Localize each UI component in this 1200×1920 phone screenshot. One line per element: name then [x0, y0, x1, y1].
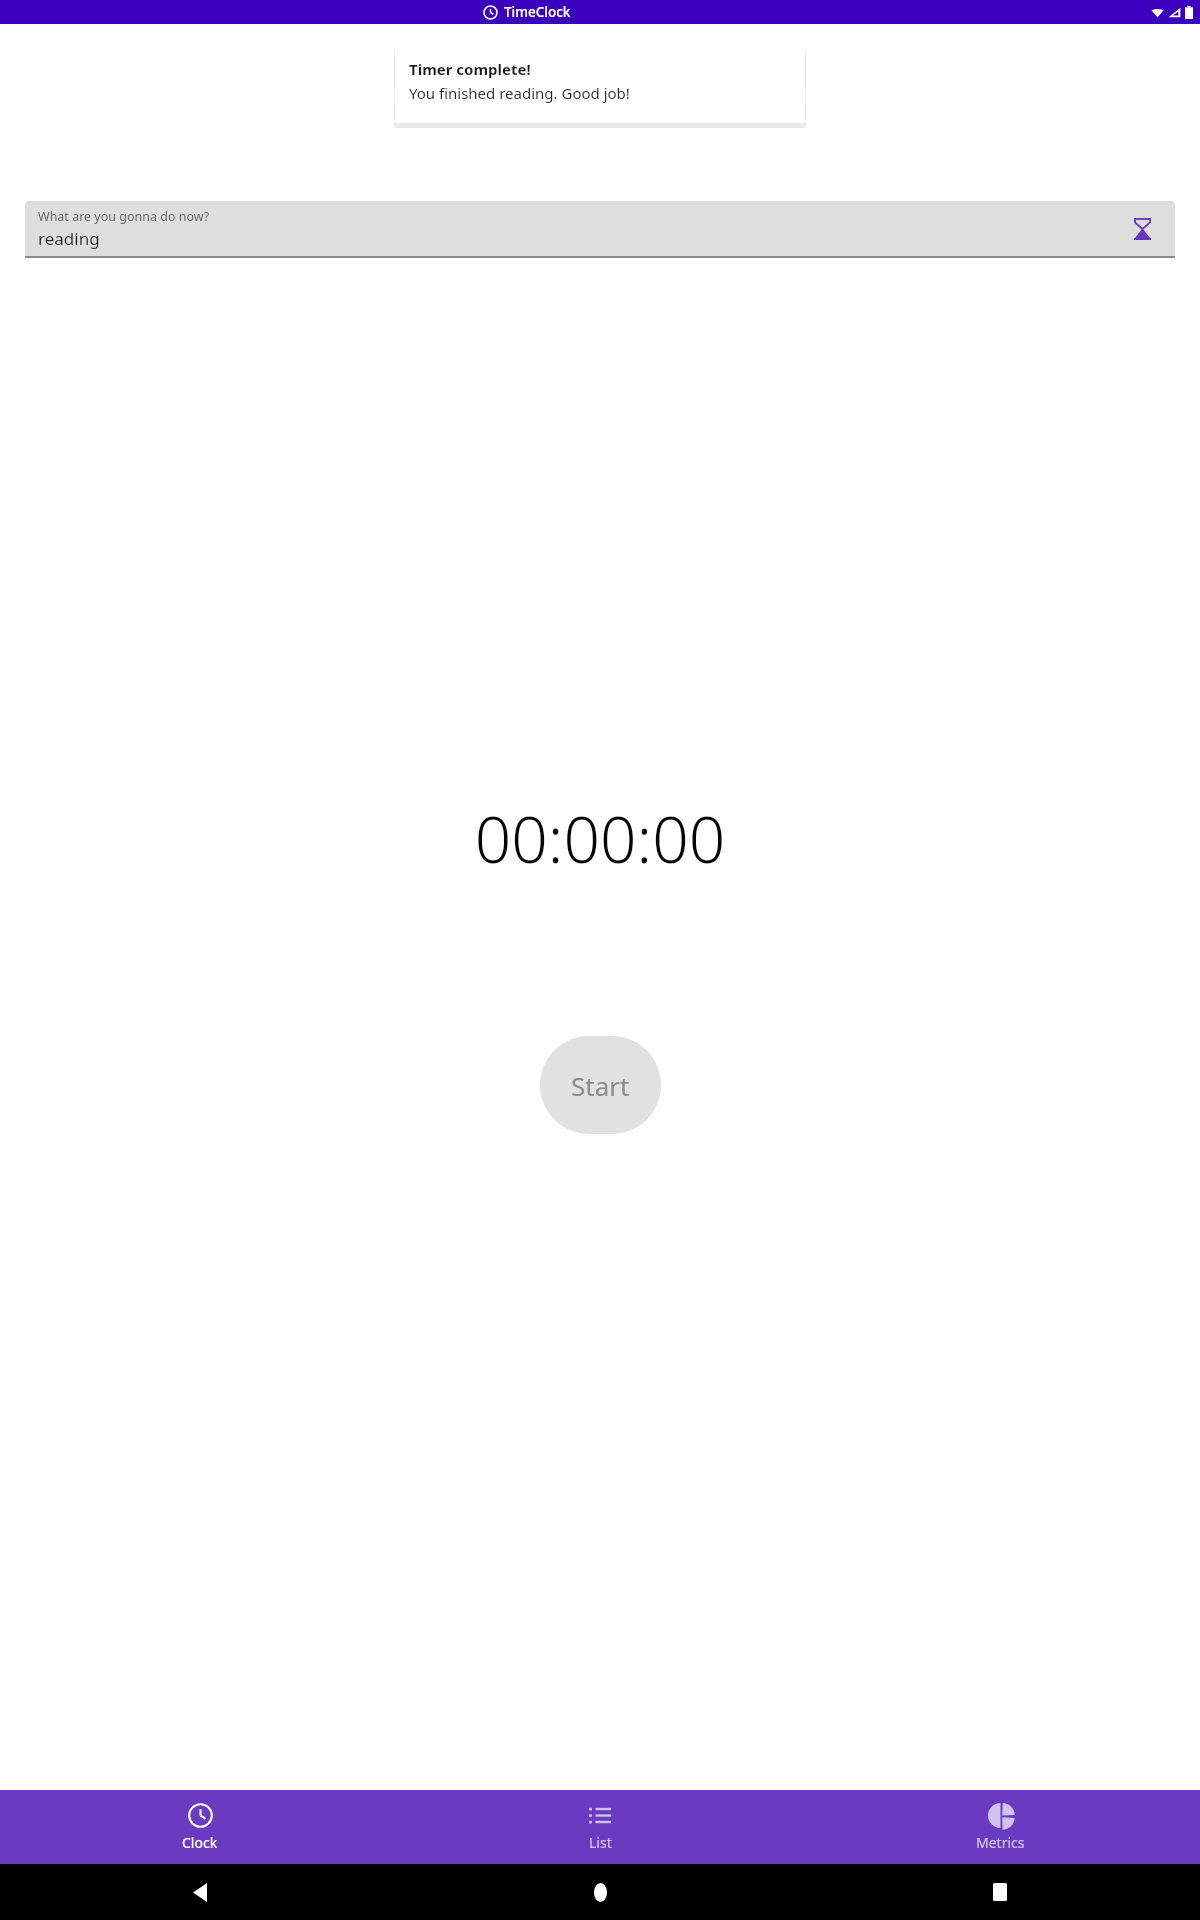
staticText: You finished reading. Good job!	[409, 83, 630, 103]
button[interactable]: Back	[183, 1875, 217, 1909]
staticText: What are you gonna do now?	[38, 208, 210, 225]
button[interactable]: Timer complete!	[395, 46, 805, 123]
staticText: Metrics	[976, 1833, 1025, 1852]
button[interactable]: List	[400, 1795, 800, 1860]
button[interactable]: What are you gonna do now?	[25, 201, 1175, 256]
button[interactable]: Recent apps	[983, 1875, 1017, 1909]
staticText: 00:00:00	[0, 795, 1200, 882]
staticText: Clock	[182, 1833, 218, 1852]
button[interactable]: Metrics	[800, 1795, 1200, 1860]
staticText: Timer complete!	[409, 59, 531, 79]
staticText: reading	[38, 227, 100, 250]
staticText: List	[589, 1833, 612, 1852]
button[interactable]: Set timer	[1125, 212, 1159, 246]
button[interactable]: Start	[540, 1036, 661, 1134]
staticText: Start	[571, 1068, 630, 1103]
staticText: TimeClock	[504, 3, 571, 21]
button[interactable]: Home	[583, 1875, 617, 1909]
button[interactable]: Clock	[0, 1795, 400, 1860]
